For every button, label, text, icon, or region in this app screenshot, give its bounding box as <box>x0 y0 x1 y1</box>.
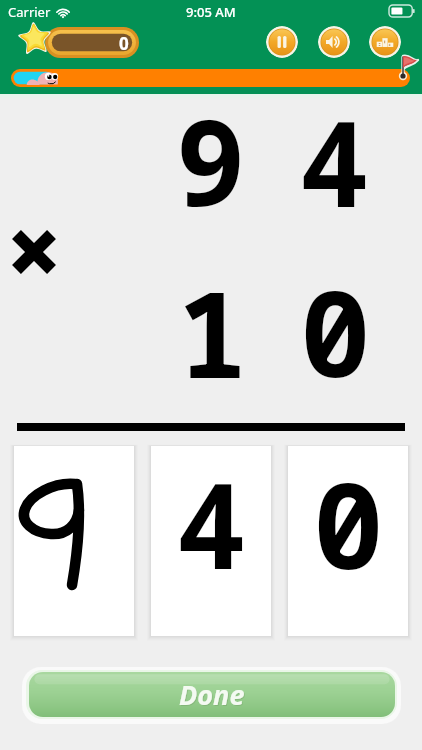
button[interactable]: Done <box>22 667 401 724</box>
staticText: 1 <box>177 252 248 413</box>
button[interactable]: Pause <box>266 26 298 58</box>
staticText: 4 <box>176 443 247 604</box>
staticText: 0 <box>300 251 371 412</box>
button[interactable]: Leaderboard <box>369 26 401 58</box>
button[interactable]: 4 <box>151 446 271 636</box>
staticText: 4 <box>299 81 370 242</box>
staticText: 9:05 AM <box>186 3 236 21</box>
staticText: Done <box>179 676 245 713</box>
button[interactable]: 0 <box>288 446 408 636</box>
button[interactable]: 0 <box>14 20 140 60</box>
staticText: Carrier <box>8 3 51 21</box>
button[interactable] <box>14 446 134 636</box>
staticText: 0 <box>313 443 384 604</box>
staticText: 0 <box>119 32 129 55</box>
staticText: 9 <box>175 80 246 241</box>
button[interactable]: Sound <box>318 26 350 58</box>
staticText: Done <box>180 677 246 714</box>
